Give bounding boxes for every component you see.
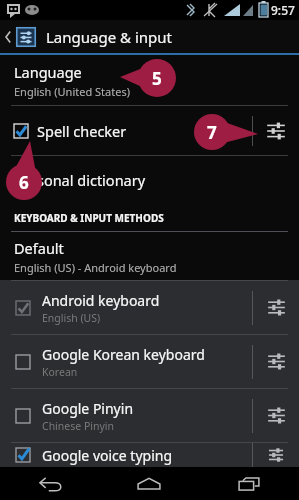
staticText: KEYBOARD & INPUT METHODS	[14, 211, 164, 225]
button[interactable]: Google Pinyin	[0, 389, 252, 442]
staticText: Chinese Pinyin	[42, 419, 115, 433]
staticText: 5	[152, 67, 162, 90]
button[interactable]: Google voice typing settings	[253, 443, 299, 467]
button[interactable]: Personal dictionary	[0, 156, 299, 204]
button[interactable]: Spell checker	[0, 106, 252, 155]
button[interactable]: Android keyboard	[0, 281, 252, 334]
staticText: 6	[19, 171, 29, 194]
staticText: Android keyboard	[42, 291, 160, 310]
staticText: English (United States)	[14, 84, 130, 99]
staticText: Google Pinyin	[42, 399, 134, 418]
button[interactable]: Google Korean keyboard settings	[253, 335, 299, 388]
button[interactable]: Spell checker settings	[253, 106, 299, 155]
button[interactable]: Default	[0, 232, 299, 280]
button[interactable]: Language	[0, 55, 299, 105]
staticText: English (US)	[42, 311, 101, 325]
staticText: Google Korean keyboard	[42, 345, 205, 364]
staticText: 9:57	[271, 2, 295, 18]
staticText: Korean	[42, 365, 78, 379]
staticText: 7	[207, 121, 217, 144]
staticText: Language & input	[46, 27, 172, 47]
staticText: English (US) - Android keyboard	[14, 260, 177, 275]
staticText: Language	[14, 62, 82, 82]
button[interactable]: Google voice typing	[0, 443, 252, 467]
staticText: Personal dictionary	[14, 170, 146, 190]
button[interactable]: Recent apps	[199, 467, 299, 500]
button[interactable]: Back	[0, 467, 99, 500]
button[interactable]: Android keyboard settings	[253, 281, 299, 334]
staticText: Default	[14, 238, 64, 258]
button[interactable]: Google Pinyin settings	[253, 389, 299, 442]
staticText: Google voice typing	[42, 446, 173, 465]
button[interactable]: Up, Language & input	[0, 20, 299, 53]
staticText: Spell checker	[37, 121, 127, 141]
button[interactable]: Home	[99, 467, 199, 500]
button[interactable]: Google Korean keyboard	[0, 335, 252, 388]
